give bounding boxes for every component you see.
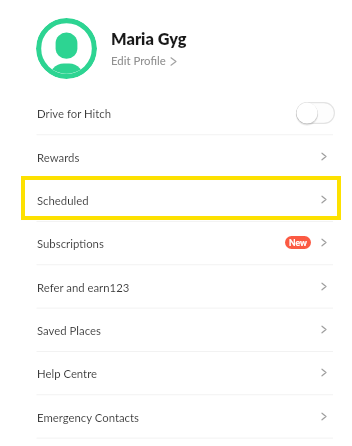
button[interactable]: Scheduled — [0, 178, 352, 221]
staticText: Drive for Hitch — [37, 107, 112, 121]
staticText: New — [289, 238, 307, 248]
staticText: Scheduled — [37, 194, 89, 208]
button[interactable]: Saved Places — [0, 308, 352, 351]
button[interactable]: Rewards — [0, 135, 352, 178]
button[interactable]: Edit Profile — [111, 54, 177, 68]
button[interactable]: Drive for Hitch toggle — [296, 102, 335, 124]
button[interactable]: Subscriptions — [0, 221, 352, 264]
staticText: Rewards — [37, 151, 80, 165]
button[interactable]: Emergency Contacts — [0, 395, 352, 438]
button[interactable]: Refer and earn123 — [0, 265, 352, 308]
button[interactable]: Help Centre — [0, 351, 352, 394]
button[interactable]: Profile photo — [36, 18, 97, 79]
button[interactable]: Drive for Hitch — [0, 91, 352, 134]
staticText: Emergency Contacts — [37, 411, 139, 425]
staticText: Edit Profile — [111, 54, 166, 68]
staticText: Subscriptions — [37, 237, 104, 251]
staticText: Help Centre — [37, 367, 98, 381]
staticText: Refer and earn123 — [37, 281, 130, 295]
staticText: Saved Places — [37, 324, 101, 338]
staticText: Maria Gyg — [111, 29, 187, 49]
